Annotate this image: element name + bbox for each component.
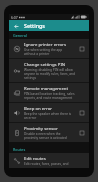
- button[interactable]: Ignore printer errors: [9, 39, 89, 58]
- staticText: PIN-based location tracking, sales repor…: [24, 92, 75, 100]
- staticText: Change settings PIN: [24, 61, 66, 67]
- button[interactable]: Edit routes: [9, 153, 89, 168]
- staticText: Remote management: [24, 85, 69, 91]
- staticText: Proximity sensor: [24, 125, 58, 131]
- staticText: Use when setting the app without a print…: [24, 48, 63, 56]
- button[interactable]: Beep on error: [78, 109, 86, 117]
- staticText: 6:07: [11, 15, 18, 20]
- staticText: Edit routes: [24, 155, 46, 161]
- button[interactable]: Beep on error: [9, 103, 89, 122]
- button[interactable]: Change settings PIN: [9, 59, 89, 82]
- staticText: Beep the speaker when there is an error: [24, 112, 72, 120]
- staticText: Ignore printer errors: [24, 41, 66, 47]
- staticText: Routes: [13, 147, 26, 152]
- button[interactable]: Remote management: [9, 83, 89, 102]
- staticText: General: [13, 33, 27, 38]
- button[interactable]: Ignore printer errors: [78, 45, 86, 53]
- staticText: Edit routes, fares, passes, and expenses: [24, 162, 69, 166]
- button[interactable]: Navigate up: [9, 20, 89, 31]
- staticText: Disable screen when the proximity sensor…: [24, 132, 67, 140]
- staticText: Beep on error: [24, 105, 53, 111]
- staticText: Settings: [24, 22, 45, 29]
- button[interactable]: Proximity sensor: [78, 129, 86, 137]
- button[interactable]: Proximity sensor: [9, 123, 89, 142]
- button[interactable]: Navigate up: [12, 22, 20, 30]
- staticText: Warning: disabling PIN will allow anyone…: [24, 68, 76, 80]
